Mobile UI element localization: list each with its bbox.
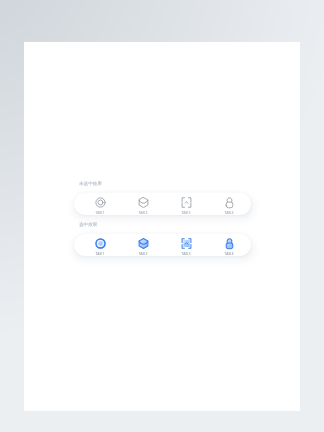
staticText: TAB 2	[138, 210, 148, 215]
staticText: TAB 3	[181, 210, 191, 215]
staticText: TAB 4	[224, 210, 234, 215]
button[interactable]: Tab 3	[170, 193, 202, 215]
staticText: 未选中效果	[79, 181, 102, 187]
staticText: TAB 4	[224, 251, 234, 256]
button[interactable]: Tab 4	[213, 234, 245, 256]
button[interactable]: Tab 3	[170, 234, 202, 256]
button[interactable]: Tab 1	[84, 234, 116, 256]
staticText: TAB 2	[138, 251, 148, 256]
button[interactable]: Tab 2	[127, 193, 159, 215]
button[interactable]: Tab 4	[213, 193, 245, 215]
staticText: TAB 1	[95, 251, 105, 256]
staticText: TAB 3	[181, 251, 191, 256]
staticText: 选中效果	[79, 222, 98, 228]
button[interactable]: Tab 2	[127, 234, 159, 256]
button[interactable]: Tab 1	[84, 193, 116, 215]
staticText: TAB 1	[95, 210, 105, 215]
